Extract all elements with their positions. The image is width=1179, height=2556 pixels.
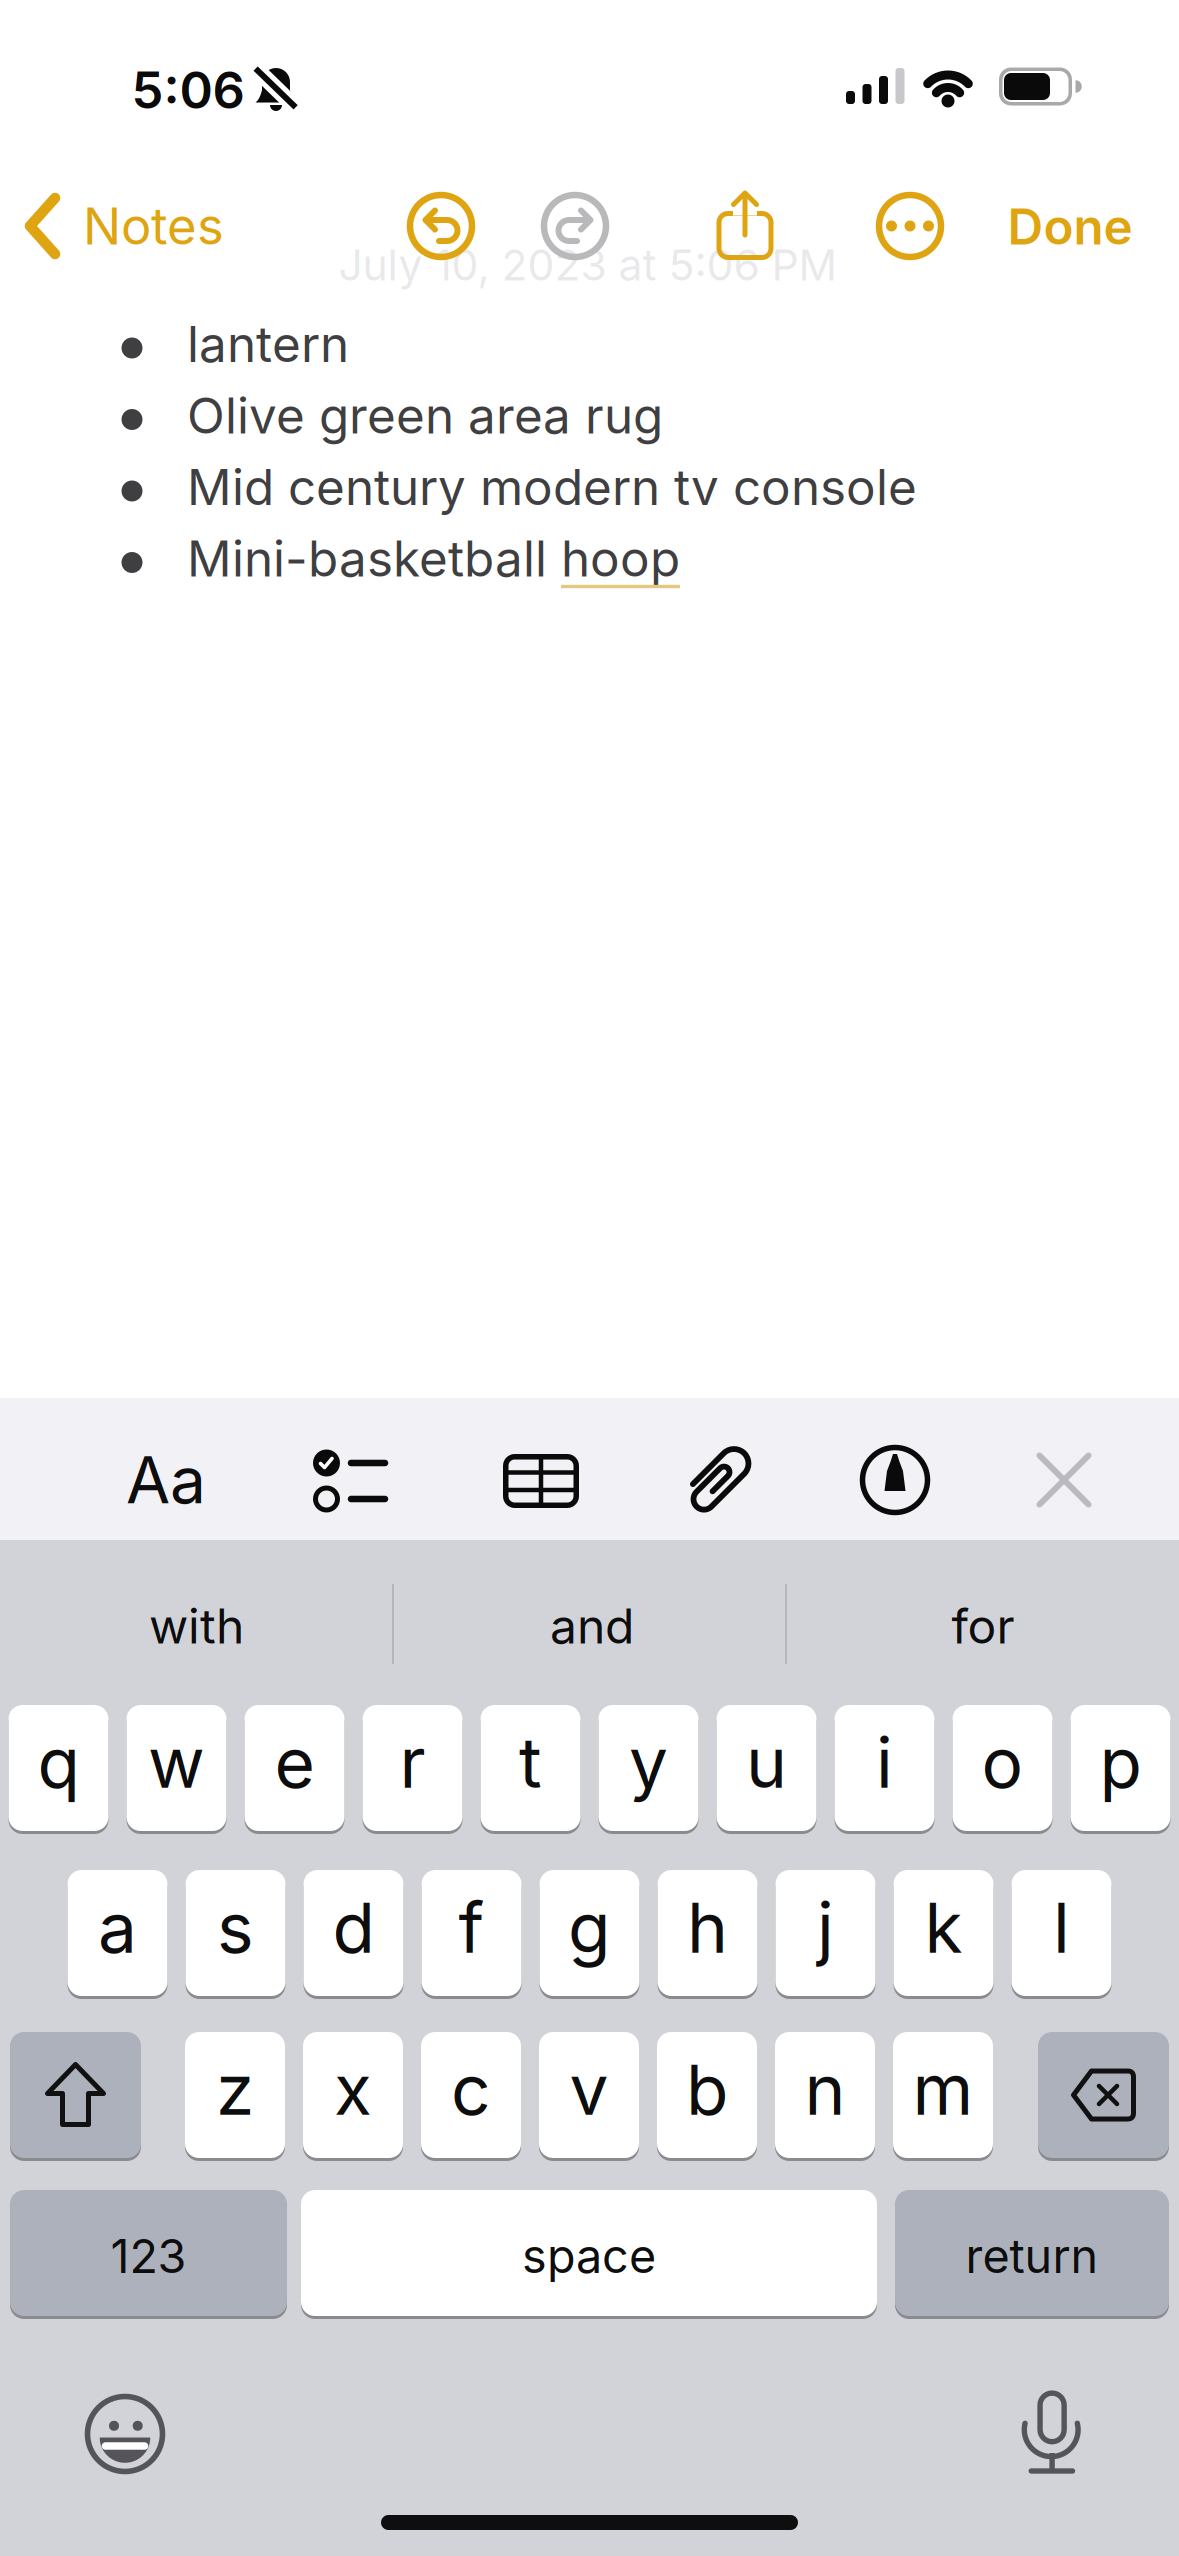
button[interactable] <box>503 1454 579 1508</box>
staticText: Mini-basketball <box>187 529 561 588</box>
staticText: f <box>458 1886 484 1969</box>
button[interactable]: for <box>793 1556 1173 1696</box>
staticText: g <box>568 1886 611 1969</box>
button[interactable]: Done <box>1007 197 1132 256</box>
button[interactable] <box>10 2188 287 2317</box>
button[interactable] <box>480 1703 580 1832</box>
button[interactable] <box>1036 1452 1091 1507</box>
staticText: x <box>334 2048 372 2131</box>
staticText: and <box>550 1597 634 1655</box>
button[interactable] <box>185 2030 285 2159</box>
button[interactable] <box>657 1868 757 1997</box>
staticText: s <box>217 1886 254 1969</box>
button[interactable] <box>1017 2387 1087 2477</box>
button[interactable] <box>421 2030 521 2159</box>
button[interactable] <box>126 1703 226 1832</box>
staticText: l <box>1053 1886 1070 1969</box>
staticText: space <box>522 2228 656 2284</box>
button[interactable] <box>303 2030 403 2159</box>
button[interactable]: and <box>402 1556 782 1696</box>
staticText: v <box>569 2048 608 2131</box>
button[interactable] <box>775 2030 875 2159</box>
button[interactable]: Aa <box>126 1441 206 1519</box>
button[interactable] <box>362 1703 462 1832</box>
staticText: m <box>912 2048 973 2131</box>
button[interactable] <box>401 186 481 266</box>
staticText: 123 <box>110 2228 186 2284</box>
staticText: c <box>451 2048 491 2131</box>
button[interactable] <box>1070 1703 1170 1832</box>
staticText: h <box>687 1886 728 1969</box>
staticText: Mid century modern tv console <box>187 457 917 517</box>
staticText: r <box>399 1721 425 1804</box>
staticText: for <box>951 1597 1014 1655</box>
button[interactable] <box>301 2188 877 2317</box>
staticText: q <box>37 1721 79 1804</box>
button[interactable] <box>185 1868 285 1997</box>
button[interactable] <box>535 186 615 266</box>
button[interactable] <box>598 1703 698 1832</box>
staticText: k <box>924 1886 962 1969</box>
staticText: u <box>746 1721 787 1804</box>
button[interactable] <box>690 1433 745 1526</box>
staticText: n <box>804 2048 845 2131</box>
staticText: lantern <box>187 314 349 374</box>
button[interactable] <box>775 1868 875 1997</box>
button[interactable] <box>859 1444 931 1516</box>
button[interactable] <box>893 1868 993 1997</box>
button[interactable] <box>8 1703 108 1832</box>
button[interactable] <box>244 1703 344 1832</box>
staticText: y <box>629 1721 668 1804</box>
staticText: return <box>965 2228 1098 2284</box>
staticText: Notes <box>83 195 224 257</box>
button[interactable]: Notes <box>24 193 224 259</box>
staticText: i <box>876 1721 893 1804</box>
staticText: w <box>148 1721 205 1804</box>
button[interactable] <box>82 2391 168 2477</box>
button[interactable] <box>421 1868 521 1997</box>
button[interactable] <box>1038 2030 1169 2159</box>
button[interactable] <box>893 2030 993 2159</box>
staticText: t <box>519 1721 542 1804</box>
staticText: d <box>332 1886 374 1969</box>
button[interactable] <box>1011 1868 1111 1997</box>
button[interactable] <box>834 1703 934 1832</box>
staticText: p <box>1099 1721 1141 1804</box>
button[interactable] <box>313 1449 389 1513</box>
button[interactable] <box>895 2188 1169 2317</box>
staticText: b <box>686 2048 728 2131</box>
button[interactable] <box>657 2030 757 2159</box>
button[interactable] <box>952 1703 1052 1832</box>
staticText: z <box>216 2048 254 2131</box>
staticText: Aa <box>126 1441 206 1519</box>
staticText: o <box>981 1721 1023 1804</box>
button[interactable] <box>539 1868 639 1997</box>
staticText: hoop <box>561 529 680 588</box>
staticText: Olive green area rug <box>187 386 663 445</box>
button[interactable] <box>713 188 777 264</box>
button[interactable] <box>539 2030 639 2159</box>
staticText: a <box>98 1886 137 1969</box>
staticText: j <box>817 1886 834 1969</box>
staticText: with <box>149 1597 244 1655</box>
staticText: July 10, 2023 at 5:06 PM <box>338 239 837 291</box>
button[interactable] <box>10 2030 141 2159</box>
button[interactable] <box>67 1868 167 1997</box>
button[interactable] <box>303 1868 403 1997</box>
button[interactable] <box>716 1703 816 1832</box>
button[interactable]: with <box>6 1556 386 1696</box>
staticText: 5:06 <box>131 59 244 121</box>
staticText: e <box>274 1721 314 1804</box>
button[interactable] <box>874 190 946 262</box>
staticText: Done <box>1007 197 1132 256</box>
